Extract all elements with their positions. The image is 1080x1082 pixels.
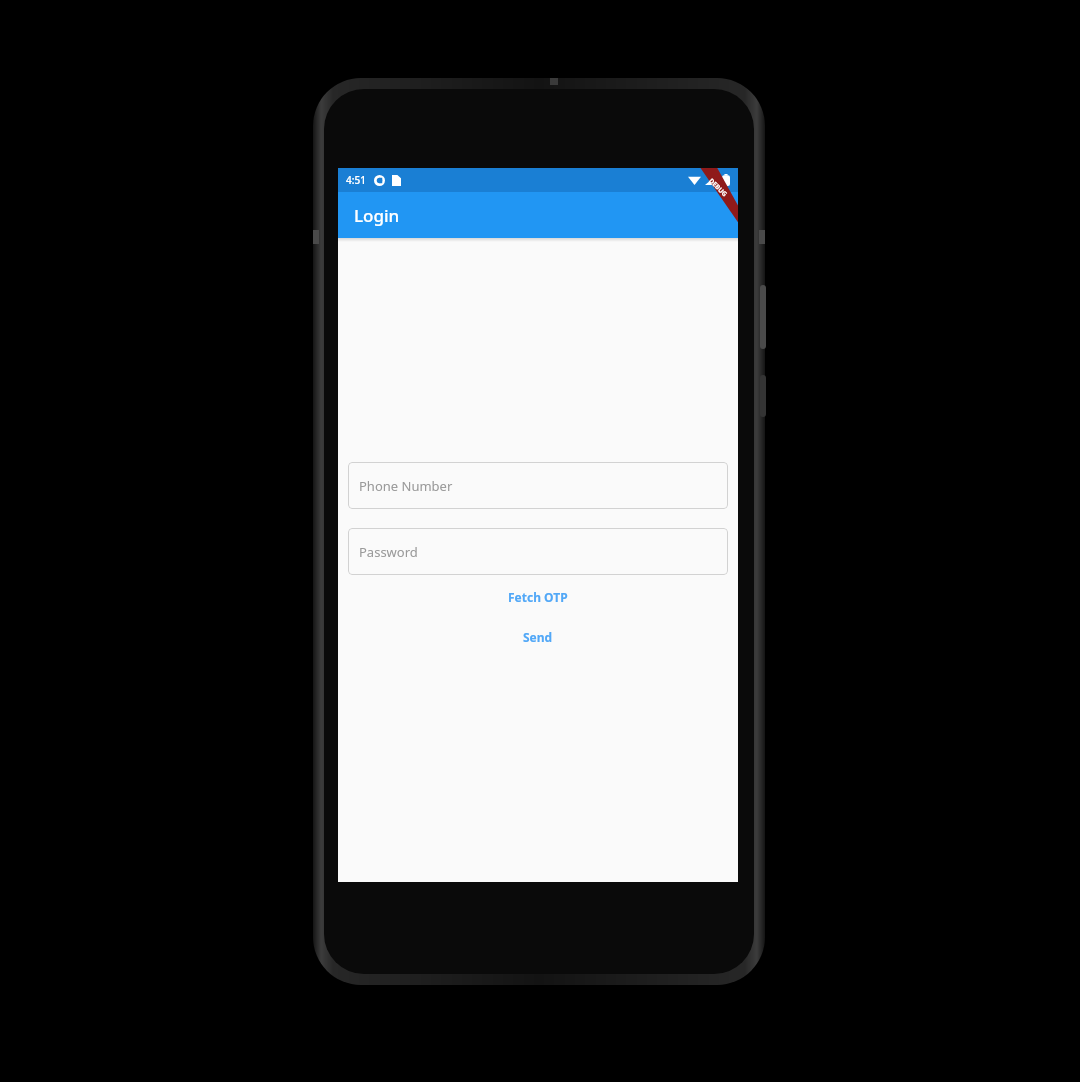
staticText: Phone Number (359, 477, 453, 495)
button[interactable]: Password (348, 528, 728, 575)
staticText: Login (354, 204, 400, 227)
staticText: Fetch OTP (508, 589, 568, 605)
button[interactable]: Fetch OTP (338, 586, 738, 608)
button[interactable]: Send (338, 626, 738, 648)
button[interactable]: Phone Number (348, 462, 728, 509)
staticText: 4:51 (346, 173, 366, 187)
staticText: DEBUG (707, 176, 730, 199)
staticText: Send (523, 629, 553, 645)
staticText: Password (359, 543, 418, 561)
